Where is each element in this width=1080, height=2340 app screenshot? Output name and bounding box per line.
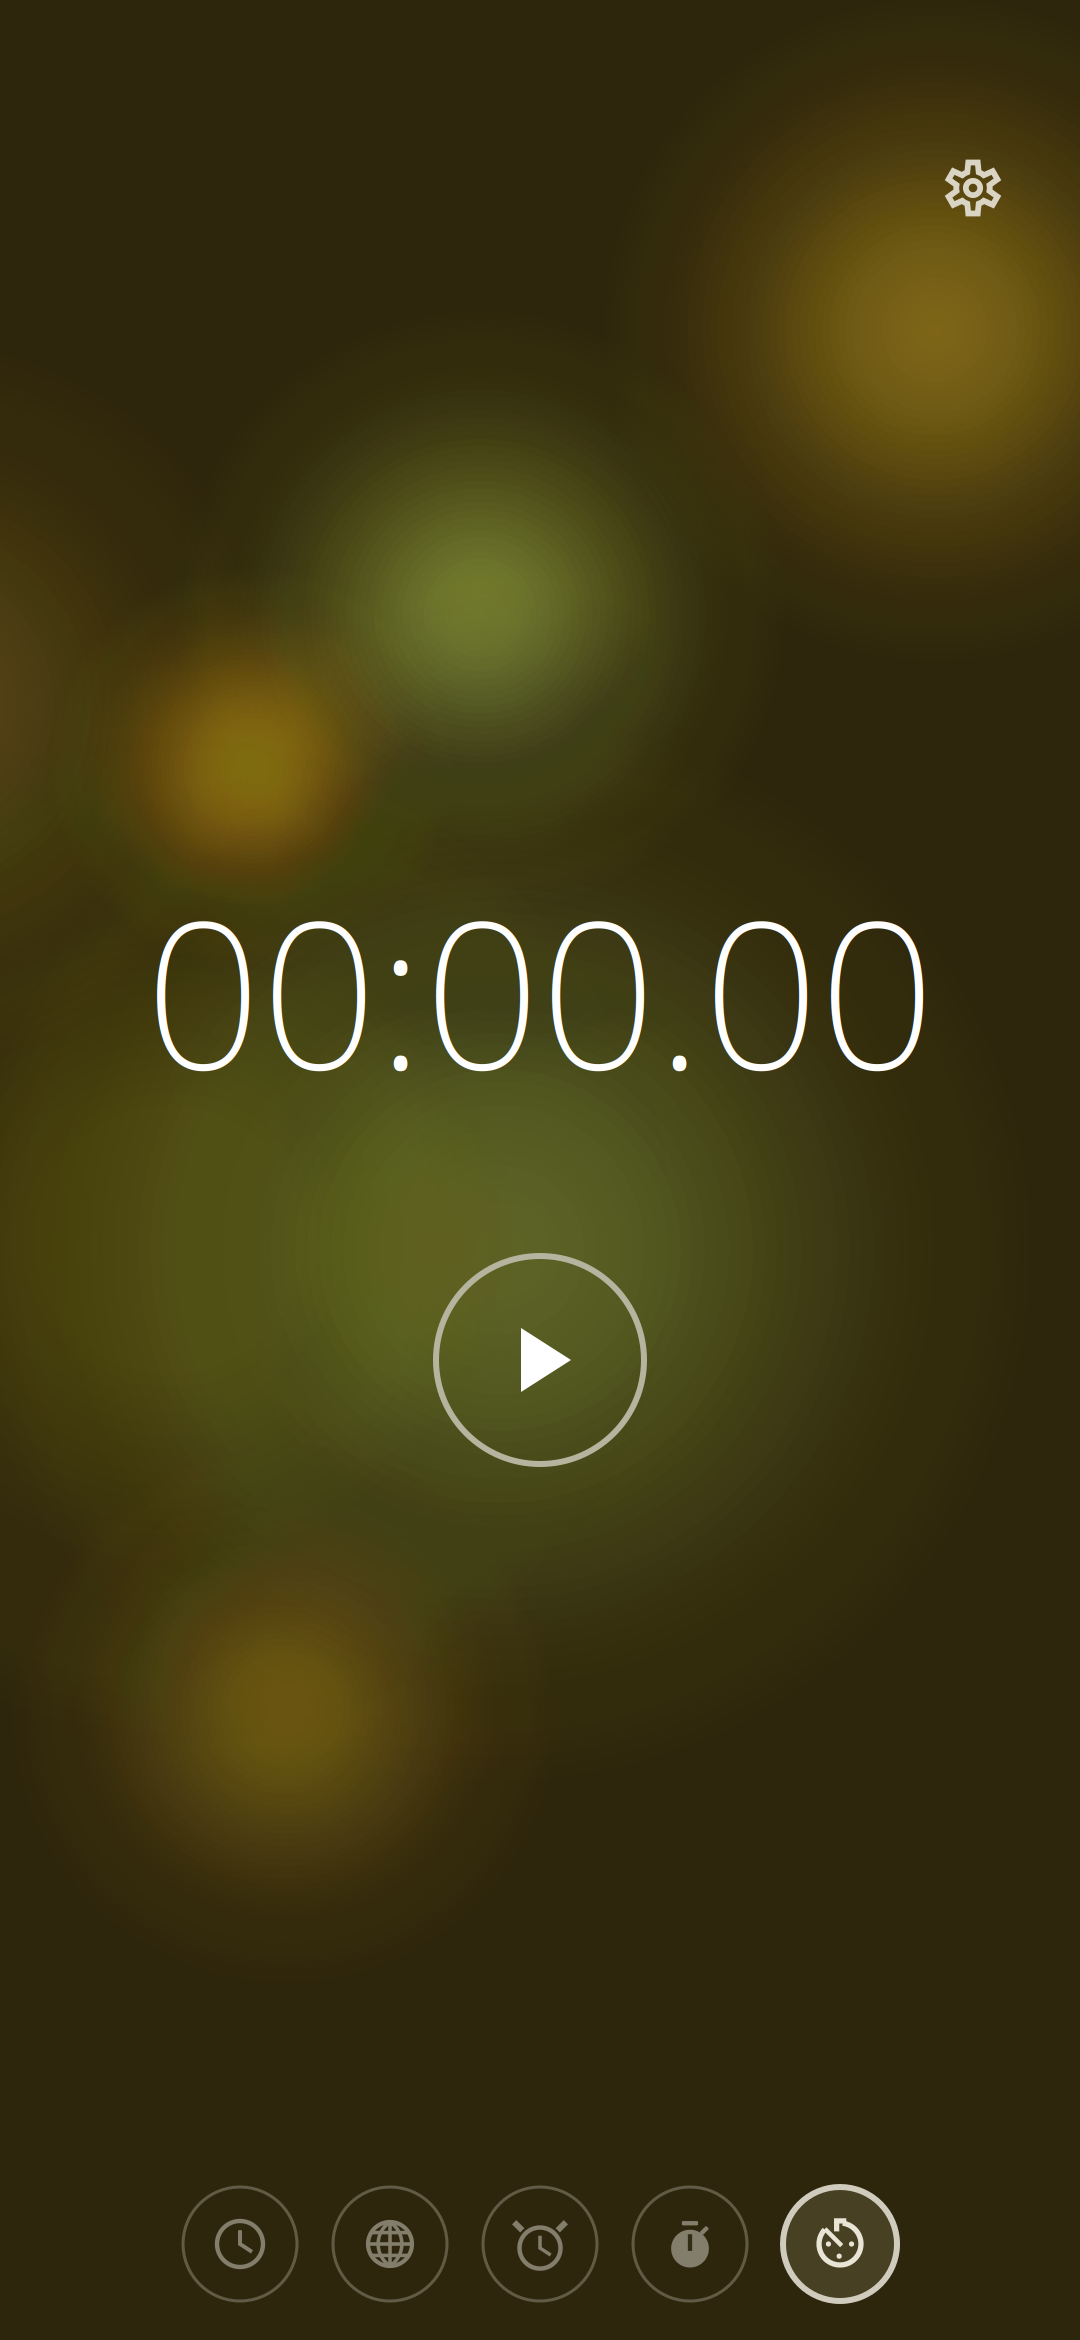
staticText: 00:00.00 — [145, 854, 935, 1125]
button[interactable]: Stopwatch — [630, 2184, 750, 2304]
button[interactable]: World Clock — [330, 2184, 450, 2304]
button[interactable]: Alarms — [480, 2184, 600, 2304]
button[interactable]: Settings — [913, 128, 1033, 248]
button[interactable]: Clock — [180, 2184, 300, 2304]
button[interactable]: Timer — [780, 2184, 900, 2304]
button[interactable]: Start — [425, 1245, 655, 1475]
